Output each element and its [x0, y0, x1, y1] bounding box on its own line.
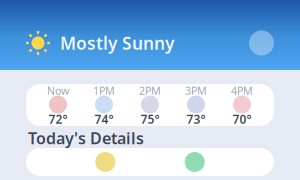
button[interactable]: 2PM [127, 84, 173, 126]
staticText: 72° [48, 111, 67, 127]
staticText: 74° [94, 111, 113, 127]
staticText: 1PM [93, 83, 115, 98]
staticText: Today's Details [28, 127, 144, 149]
button[interactable]: 4PM [219, 84, 265, 126]
staticText: 75° [140, 111, 159, 127]
staticText: 70° [232, 111, 251, 127]
staticText: 73° [186, 111, 205, 127]
staticText: Now [47, 83, 69, 98]
button[interactable]: Now [35, 84, 81, 126]
staticText: Mostly Sunny [50, 31, 174, 54]
button[interactable]: 1PM [81, 84, 127, 126]
button[interactable]: 3PM [173, 84, 219, 126]
button[interactable]: Profile [249, 30, 274, 55]
staticText: 2PM [139, 83, 161, 98]
staticText: 3PM [185, 83, 207, 98]
staticText: 4PM [231, 83, 253, 98]
